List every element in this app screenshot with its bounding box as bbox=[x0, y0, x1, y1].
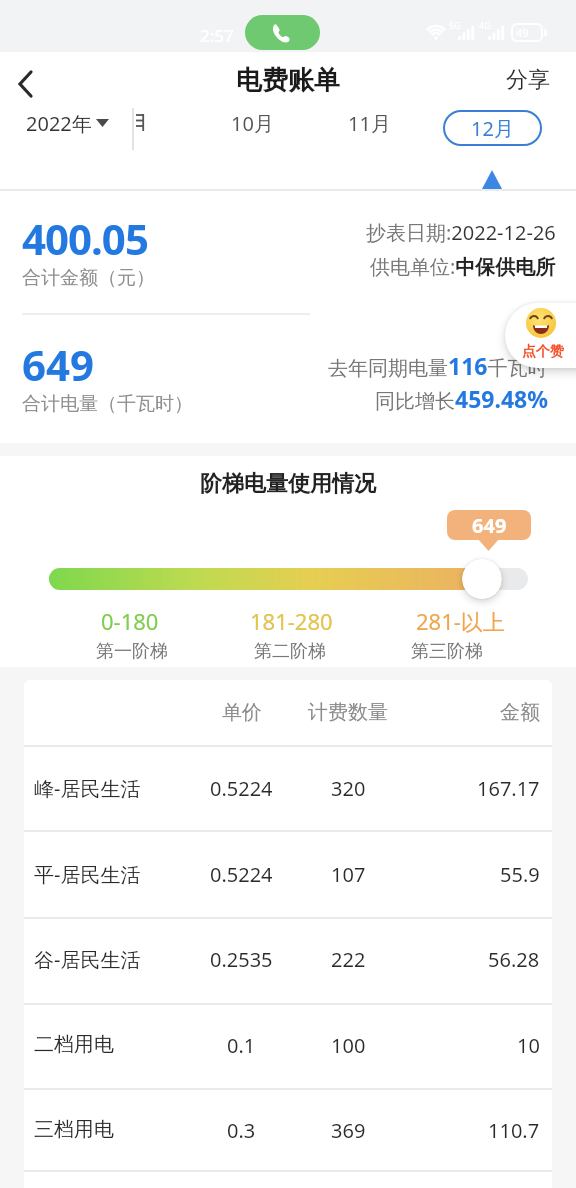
staticText: 56.28 bbox=[488, 946, 540, 973]
button[interactable] bbox=[24, 747, 552, 830]
staticText: 0.5224 bbox=[210, 861, 273, 888]
staticText: 点个赞 bbox=[522, 343, 564, 361]
staticText: 0.5224 bbox=[210, 775, 273, 802]
staticText: 5G bbox=[449, 19, 461, 31]
staticText: 100 bbox=[331, 1032, 366, 1059]
staticText: 峰-居民生活 bbox=[34, 775, 141, 802]
staticText: 2022年 bbox=[26, 110, 92, 137]
staticText: 181-280 bbox=[250, 606, 333, 636]
staticText: 10月 bbox=[231, 110, 274, 137]
staticText: 222 bbox=[331, 946, 366, 973]
staticText: 第二阶梯 bbox=[254, 640, 326, 663]
staticText: 第一阶梯 bbox=[96, 640, 168, 663]
staticText: 计费数量 bbox=[308, 700, 388, 725]
staticText: 单价 bbox=[222, 700, 262, 725]
button[interactable]: 分享 bbox=[506, 66, 550, 94]
staticText: 369 bbox=[331, 1117, 366, 1144]
staticText: 第三阶梯 bbox=[411, 640, 483, 663]
staticText: 167.17 bbox=[477, 775, 540, 802]
button[interactable] bbox=[24, 919, 552, 1002]
staticText: 12月 bbox=[471, 115, 514, 142]
staticText: 107 bbox=[331, 861, 366, 888]
staticText: 400.05 bbox=[22, 210, 148, 267]
staticText: 4G bbox=[479, 19, 491, 31]
staticText: 分享 bbox=[506, 66, 550, 94]
staticText: 供电单位:中保供电所 bbox=[370, 253, 556, 280]
staticText: 三档用电 bbox=[34, 1117, 114, 1142]
button[interactable] bbox=[245, 15, 320, 50]
staticText: 55.9 bbox=[500, 861, 540, 888]
staticText: 抄表日期:2022-12-26 bbox=[366, 219, 556, 246]
staticText: 649 bbox=[472, 512, 507, 539]
button[interactable] bbox=[24, 1090, 552, 1173]
staticText: 谷-居民生活 bbox=[34, 946, 141, 973]
staticText: 合计电量（千瓦时） bbox=[22, 392, 193, 416]
staticText: 0.2535 bbox=[210, 946, 273, 973]
staticText: 281-以上 bbox=[416, 606, 505, 636]
staticText: 去年同期电量116千瓦时 bbox=[328, 350, 548, 381]
staticText: 电费账单 bbox=[236, 64, 340, 97]
staticText: 0.3 bbox=[227, 1117, 256, 1144]
button[interactable] bbox=[24, 1005, 552, 1088]
button[interactable] bbox=[20, 106, 120, 146]
staticText: 320 bbox=[331, 775, 366, 802]
staticText: 阶梯电量使用情况 bbox=[200, 470, 376, 498]
staticText: 平-居民生活 bbox=[34, 861, 141, 888]
staticText: 649 bbox=[22, 336, 95, 393]
button[interactable]: 12月 bbox=[443, 110, 542, 146]
staticText: 金额 bbox=[500, 700, 540, 725]
staticText: 二档用电 bbox=[34, 1032, 114, 1057]
staticText: 合计金额（元） bbox=[22, 266, 155, 290]
staticText: 同比增长459.48% bbox=[375, 383, 548, 414]
button[interactable] bbox=[18, 70, 34, 98]
button[interactable] bbox=[505, 303, 576, 368]
staticText: 2:57 bbox=[200, 24, 234, 47]
button[interactable] bbox=[226, 104, 278, 144]
staticText: 0.1 bbox=[227, 1032, 256, 1059]
button[interactable] bbox=[24, 832, 552, 915]
staticText: 110.7 bbox=[488, 1117, 540, 1144]
staticText: 11月 bbox=[348, 110, 391, 137]
staticText: 49 bbox=[516, 25, 529, 40]
staticText: 10 bbox=[517, 1032, 540, 1059]
button[interactable] bbox=[343, 104, 395, 144]
staticText: 0-180 bbox=[101, 606, 159, 636]
